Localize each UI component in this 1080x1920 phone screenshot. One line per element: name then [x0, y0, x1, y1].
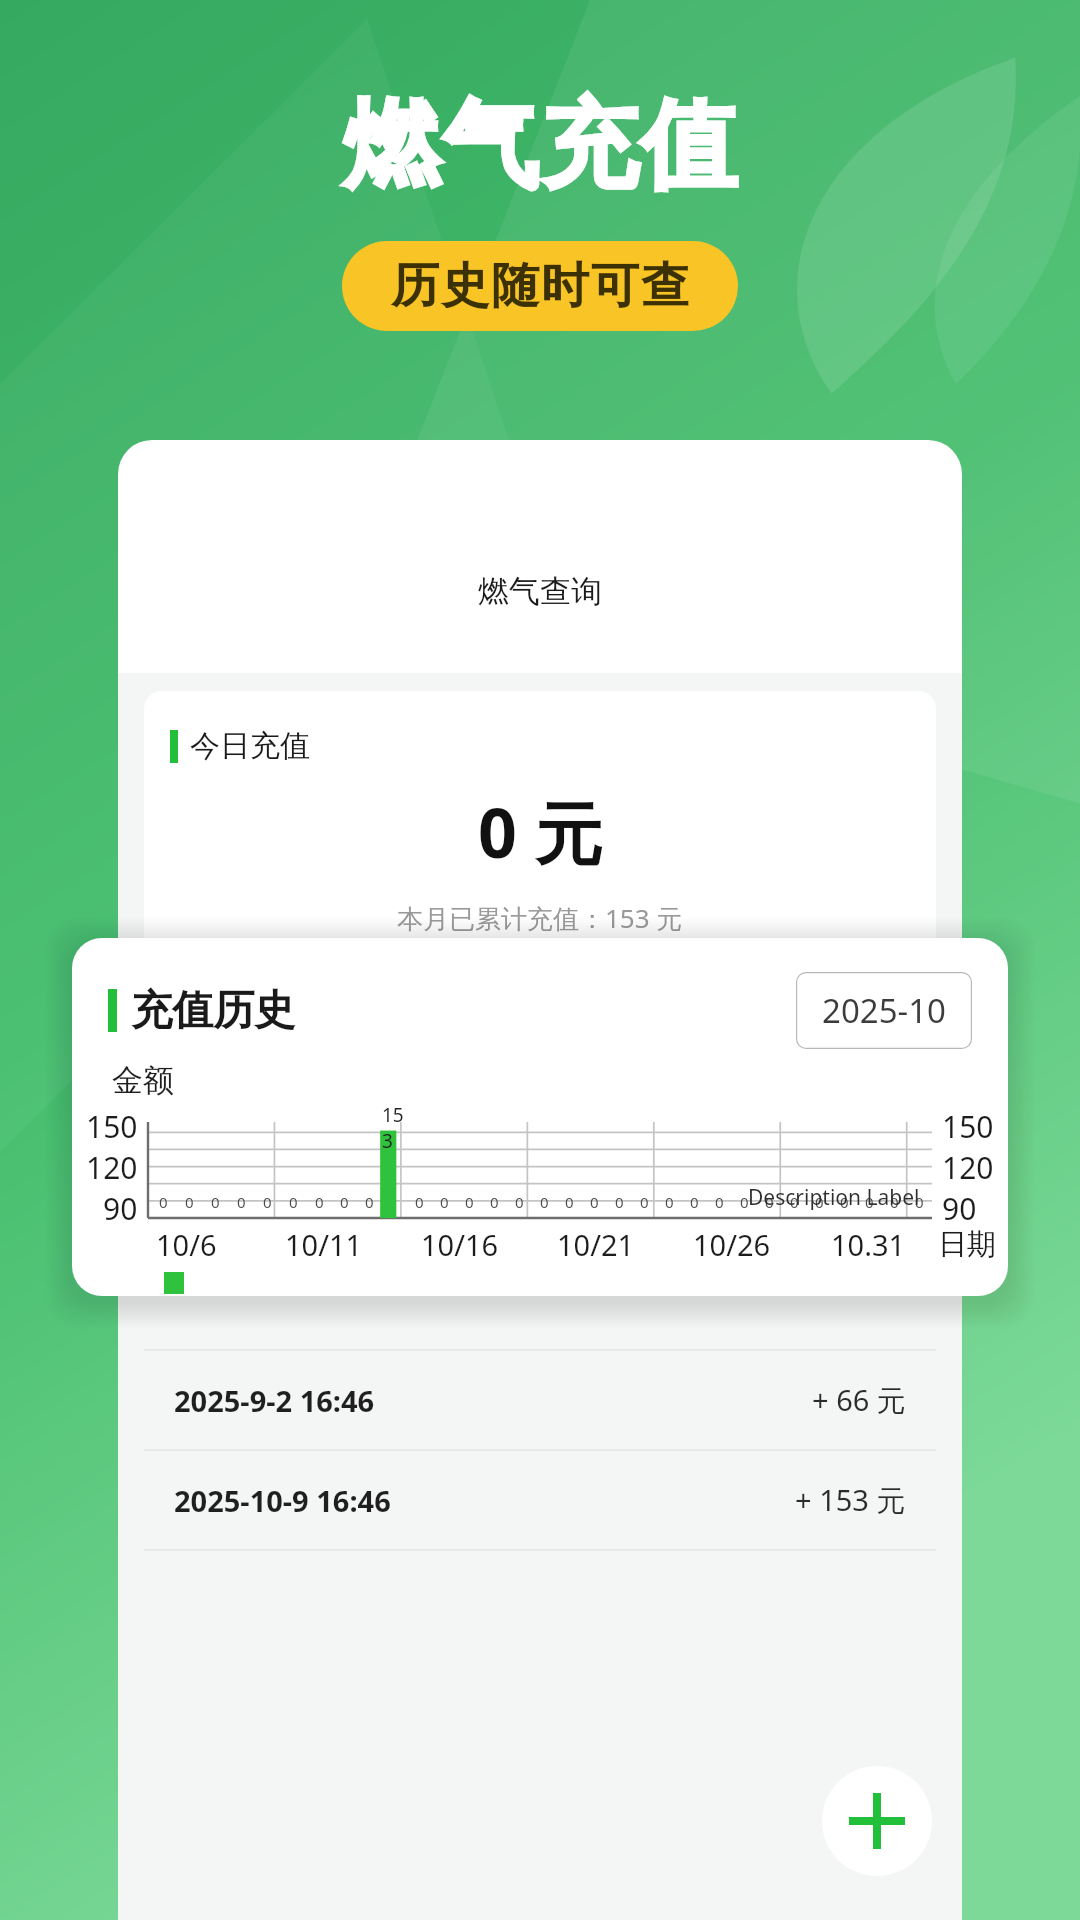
button[interactable]: 2025-9-2 16:46	[118, 1351, 962, 1449]
staticText: 0	[565, 1192, 574, 1212]
staticText: 10/11	[285, 1225, 363, 1264]
staticText: 0	[340, 1192, 349, 1212]
staticText: 0	[159, 1192, 168, 1212]
staticText: 0	[540, 1192, 549, 1212]
staticText: 历史随时可查	[390, 256, 690, 316]
staticText: 0	[815, 1192, 824, 1212]
staticText: 0	[790, 1192, 799, 1212]
staticText: 0	[289, 1192, 298, 1212]
staticText: 120	[942, 1147, 994, 1188]
staticText: 150	[942, 1106, 994, 1147]
staticText: 燃气查询	[478, 572, 602, 611]
staticText: 0	[865, 1192, 874, 1212]
staticText: 0	[315, 1192, 324, 1212]
staticText: 10/26	[693, 1225, 771, 1264]
staticText: 0	[440, 1192, 449, 1212]
staticText: 0	[237, 1192, 246, 1212]
staticText: 10/6	[156, 1225, 217, 1264]
button[interactable]: 历史随时可查	[342, 241, 738, 331]
staticText: Description Label	[748, 1183, 920, 1212]
staticText: 0	[185, 1192, 194, 1212]
staticText: 0	[640, 1192, 649, 1212]
staticText: 燃气充值	[342, 86, 738, 207]
staticText: 10/16	[421, 1225, 499, 1264]
staticText: + 153 元	[795, 1480, 906, 1520]
staticText: 0	[590, 1192, 599, 1212]
staticText: 0 元	[478, 785, 603, 878]
staticText: 0	[665, 1192, 674, 1212]
staticText: 0	[740, 1192, 749, 1212]
staticText: 0	[211, 1192, 220, 1212]
staticText: 0	[890, 1192, 899, 1212]
staticText: 120	[86, 1147, 138, 1188]
staticText: 0	[615, 1192, 624, 1212]
staticText: 150	[86, 1106, 138, 1147]
staticText: 0	[490, 1192, 499, 1212]
staticText: 0	[915, 1192, 924, 1212]
staticText: 90	[103, 1188, 138, 1226]
staticText: 2025-9-2 16:46	[174, 1381, 375, 1420]
staticText: 日期	[938, 1226, 996, 1263]
staticText: 金额	[112, 1061, 174, 1100]
staticText: 10.31	[831, 1225, 906, 1264]
staticText: 2025-10	[822, 988, 946, 1033]
button[interactable]: 今日充值	[144, 691, 936, 1031]
staticText: 10/21	[557, 1225, 635, 1264]
staticText: 充值历史	[131, 985, 295, 1037]
staticText: 0	[263, 1192, 272, 1212]
staticText: 0	[515, 1192, 524, 1212]
staticText: 90	[942, 1188, 977, 1226]
staticText: 0	[715, 1192, 724, 1212]
staticText: 153	[382, 1102, 407, 1154]
button[interactable]: Add recharge	[822, 1766, 932, 1876]
staticText: 0	[365, 1192, 374, 1212]
button[interactable]: 2025-10-9 16:46	[118, 1451, 962, 1549]
staticText: 0	[465, 1192, 474, 1212]
staticText: 0	[840, 1192, 849, 1212]
staticText: 0	[765, 1192, 774, 1212]
staticText: + 66 元	[812, 1380, 906, 1420]
staticText: 0	[415, 1192, 424, 1212]
staticText: 2025-10-9 16:46	[174, 1481, 391, 1520]
staticText: 今日充值	[190, 727, 310, 765]
staticText: 0	[690, 1192, 699, 1212]
button[interactable]: 2025-10	[796, 972, 972, 1049]
staticText: 本月已累计充值：153 元	[397, 900, 683, 936]
